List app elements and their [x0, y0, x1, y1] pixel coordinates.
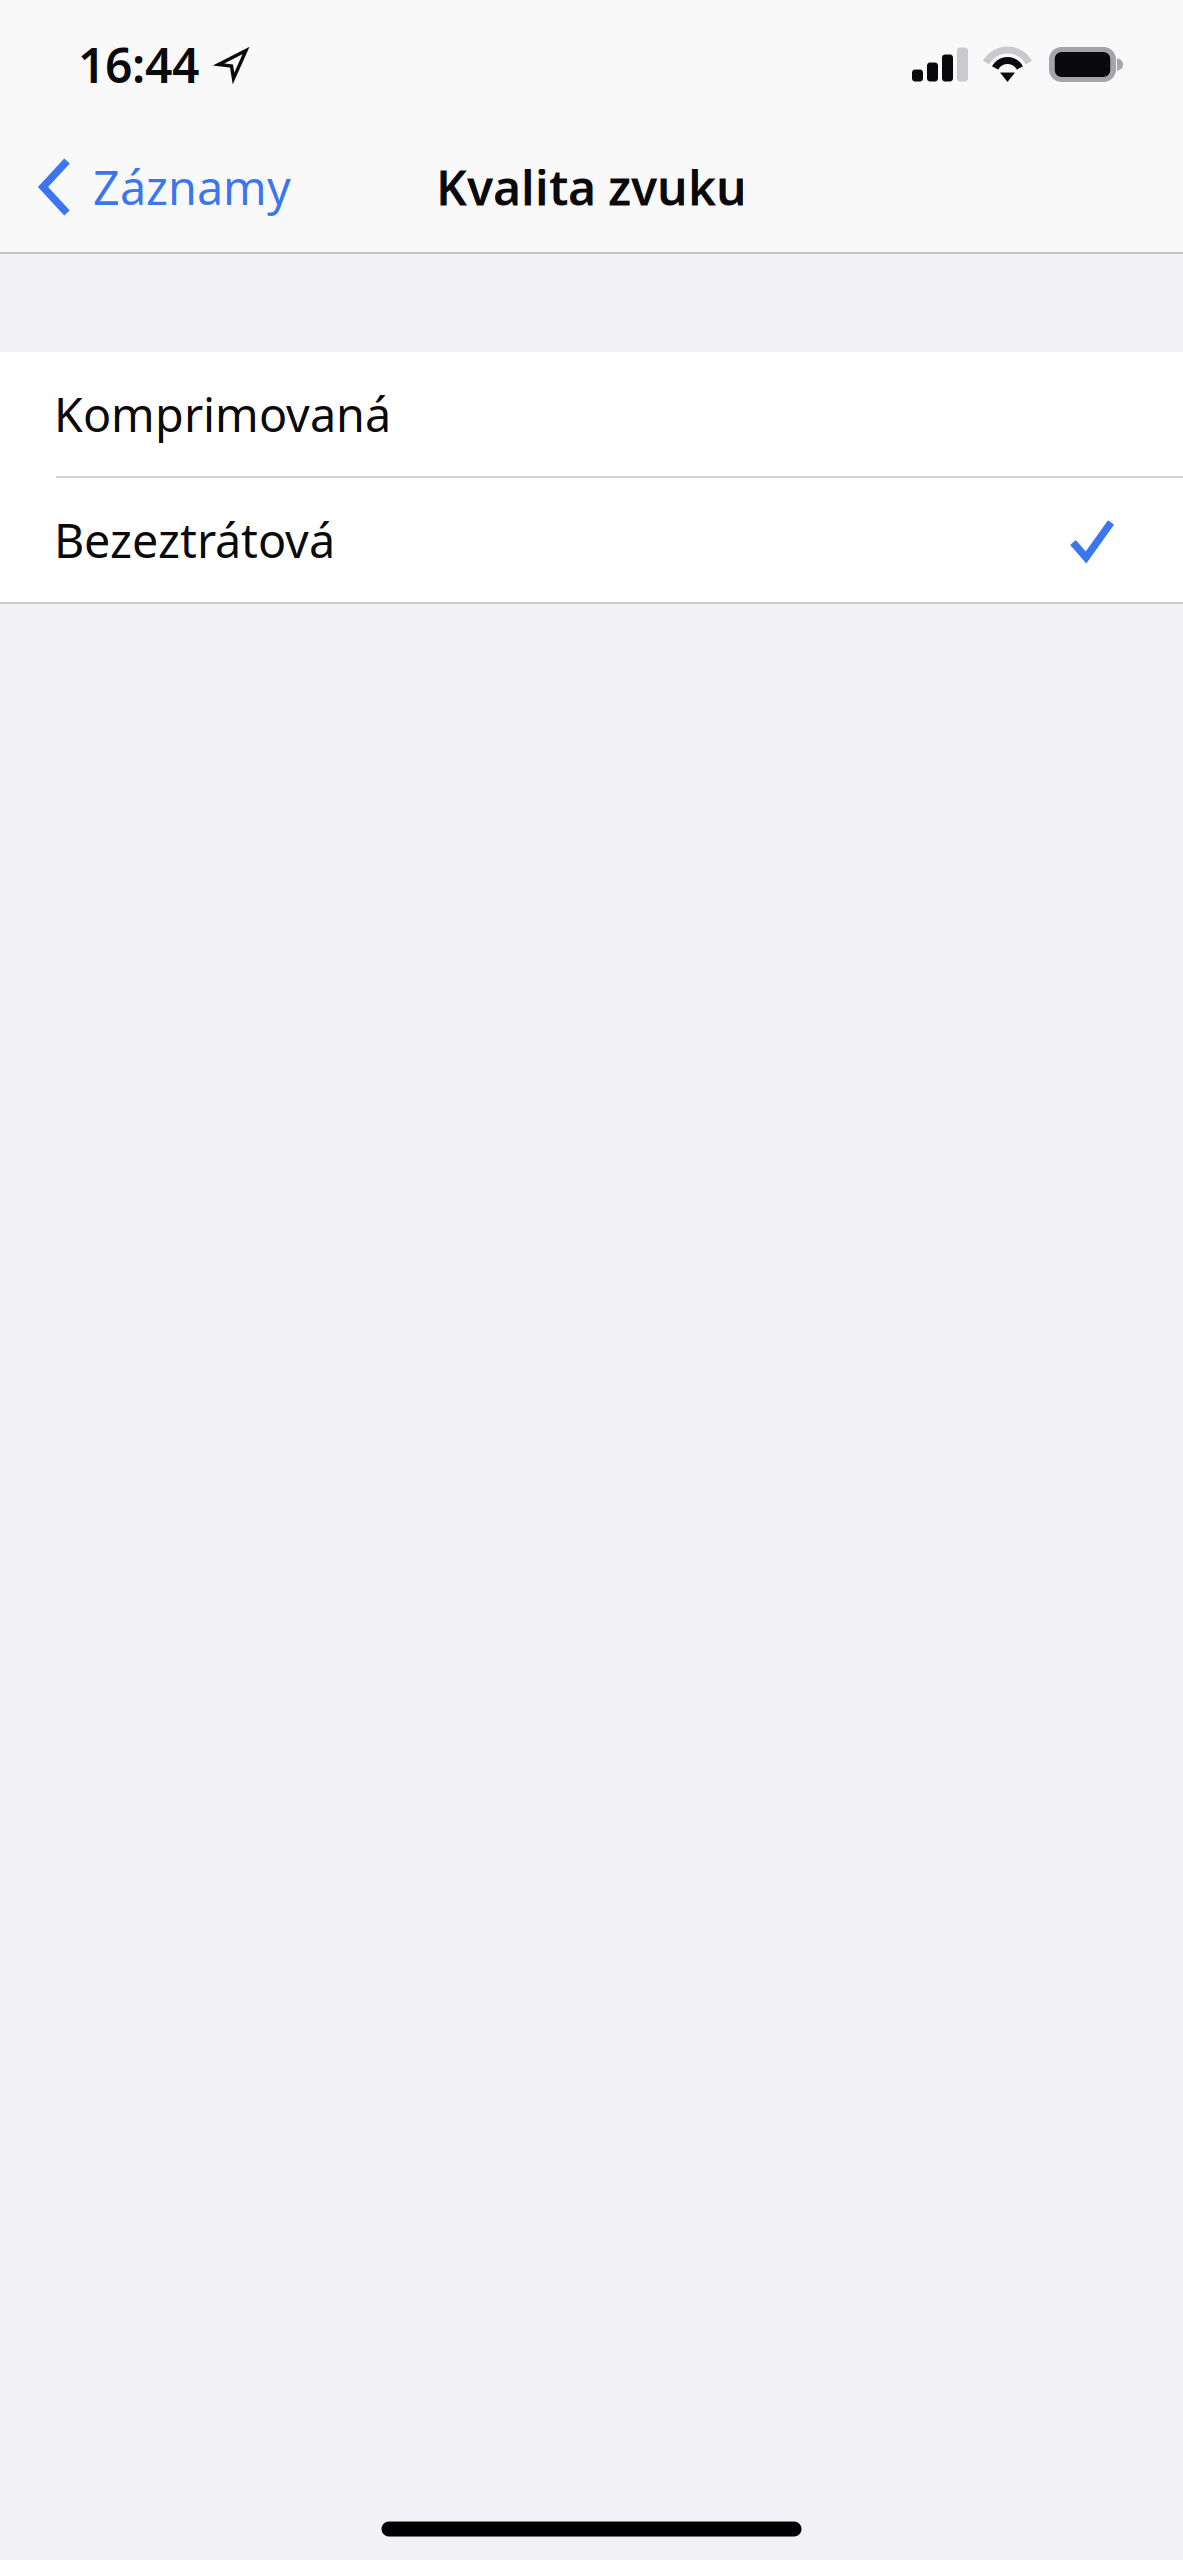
staticText: Bezeztrátová — [54, 509, 335, 571]
staticText: 16:44 — [78, 33, 199, 96]
button[interactable]: Komprimovaná — [0, 352, 1183, 476]
staticText: Komprimovaná — [54, 383, 391, 445]
staticText: Kvalita zvuku — [436, 155, 747, 219]
button[interactable]: Záznamy — [0, 135, 315, 239]
button[interactable]: Bezeztrátová — [0, 478, 1183, 602]
staticText: Záznamy — [93, 156, 291, 218]
